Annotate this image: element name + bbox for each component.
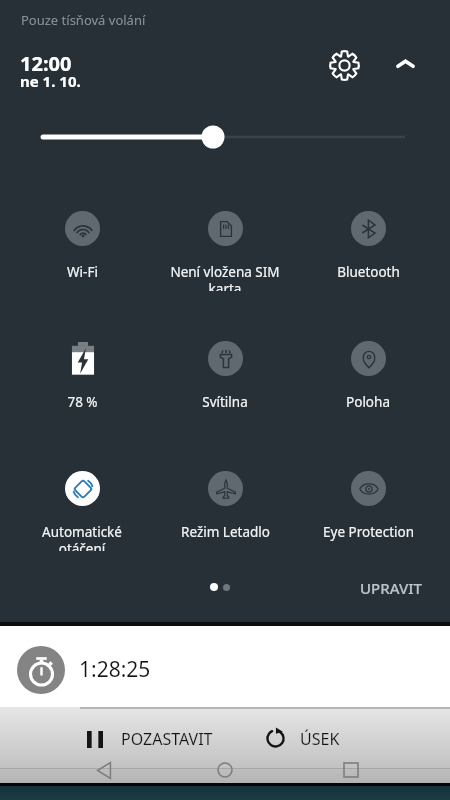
- staticText: 78 %: [67, 393, 98, 411]
- staticText: Wi-Fi: [67, 263, 98, 281]
- staticText: Automatické otáčení: [42, 523, 122, 551]
- button[interactable]: Wi-Fi: [11, 207, 153, 291]
- button[interactable]: Settings: [324, 45, 365, 86]
- staticText: ÚSEK: [300, 728, 340, 750]
- button[interactable]: Bluetooth: [297, 207, 439, 291]
- staticText: Svítilna: [202, 393, 248, 411]
- button[interactable]: Brightness: [30, 118, 420, 156]
- staticText: ne 1. 10.: [20, 71, 81, 91]
- staticText: Bluetooth: [337, 263, 400, 281]
- button[interactable]: Není vložena SIM karta: [154, 207, 296, 291]
- staticText: Poloha: [346, 393, 390, 411]
- staticText: UPRAVIT: [360, 578, 422, 598]
- button[interactable]: Home: [210, 758, 240, 782]
- staticText: 12:00: [20, 50, 72, 77]
- staticText: 1:28:25: [79, 655, 151, 684]
- button[interactable]: POZASTAVIT: [78, 722, 222, 756]
- button[interactable]: Režim Letadlo: [154, 467, 296, 551]
- button[interactable]: 78 %: [11, 337, 153, 421]
- staticText: Režim Letadlo: [181, 523, 270, 541]
- button[interactable]: Automatické otáčení: [11, 467, 153, 551]
- button[interactable]: Recents: [336, 758, 366, 782]
- button[interactable]: ÚSEK: [255, 721, 349, 756]
- staticText: Eye Protection: [323, 523, 414, 541]
- button[interactable]: Collapse: [385, 43, 426, 84]
- staticText: Pouze tísňová volání: [21, 11, 146, 29]
- button[interactable]: Back: [89, 758, 119, 782]
- staticText: POZASTAVIT: [121, 728, 213, 750]
- button[interactable]: Svítilna: [154, 337, 296, 421]
- staticText: Není vložena SIM karta: [170, 263, 280, 291]
- button[interactable]: Eye Protection: [297, 467, 439, 551]
- button[interactable]: UPRAVIT: [360, 578, 422, 598]
- button[interactable]: Poloha: [297, 337, 439, 421]
- button[interactable]: 1:28:25: [0, 626, 450, 707]
